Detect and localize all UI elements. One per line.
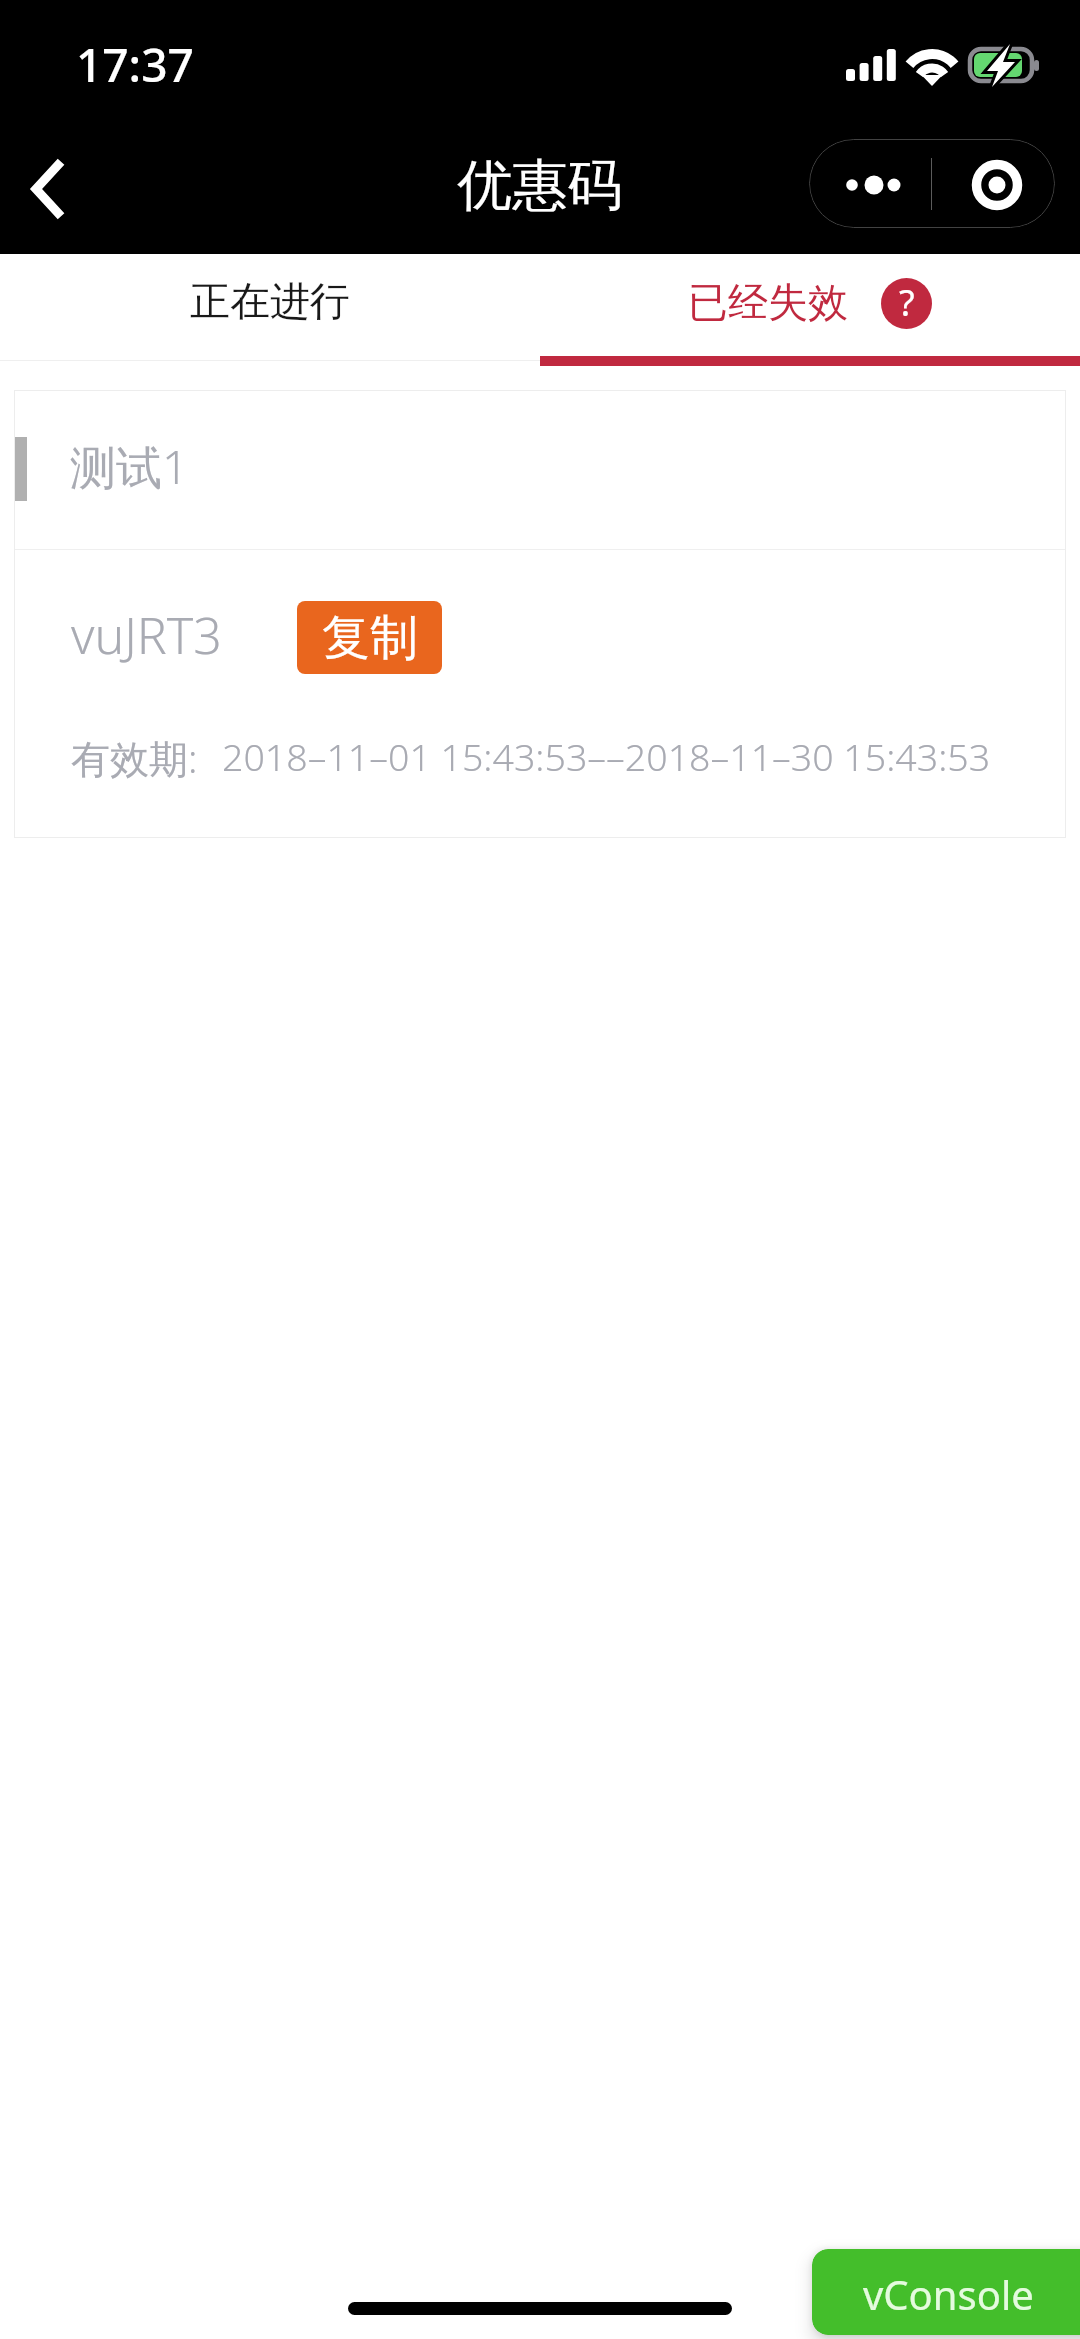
button[interactable]: Help bbox=[881, 278, 932, 329]
button[interactable]: Close bbox=[932, 139, 1055, 228]
button[interactable]: 复制 bbox=[297, 601, 442, 674]
staticText: vuJRT3 bbox=[71, 601, 222, 669]
staticText: 2018–11–01 15:43:53––2018–11–30 15:43:53 bbox=[222, 731, 991, 782]
button[interactable]: Back bbox=[0, 132, 100, 236]
staticText: 有效期: bbox=[71, 731, 198, 784]
staticText: vConsole bbox=[863, 2267, 1034, 2321]
button[interactable]: 已经失效 bbox=[540, 254, 1080, 366]
button[interactable]: 测试1 bbox=[14, 390, 1066, 838]
button[interactable]: 正在进行 bbox=[0, 254, 540, 366]
button[interactable]: More options bbox=[809, 139, 931, 228]
staticText: 复制 bbox=[322, 608, 418, 668]
staticText: 已经失效 bbox=[688, 277, 848, 327]
staticText: 优惠码 bbox=[0, 151, 1080, 220]
staticText: 测试1 bbox=[70, 435, 189, 498]
staticText: ? bbox=[899, 278, 915, 327]
button[interactable]: vConsole bbox=[812, 2249, 1080, 2335]
staticText: 正在进行 bbox=[190, 276, 350, 326]
staticText: 17:37 bbox=[76, 33, 194, 96]
